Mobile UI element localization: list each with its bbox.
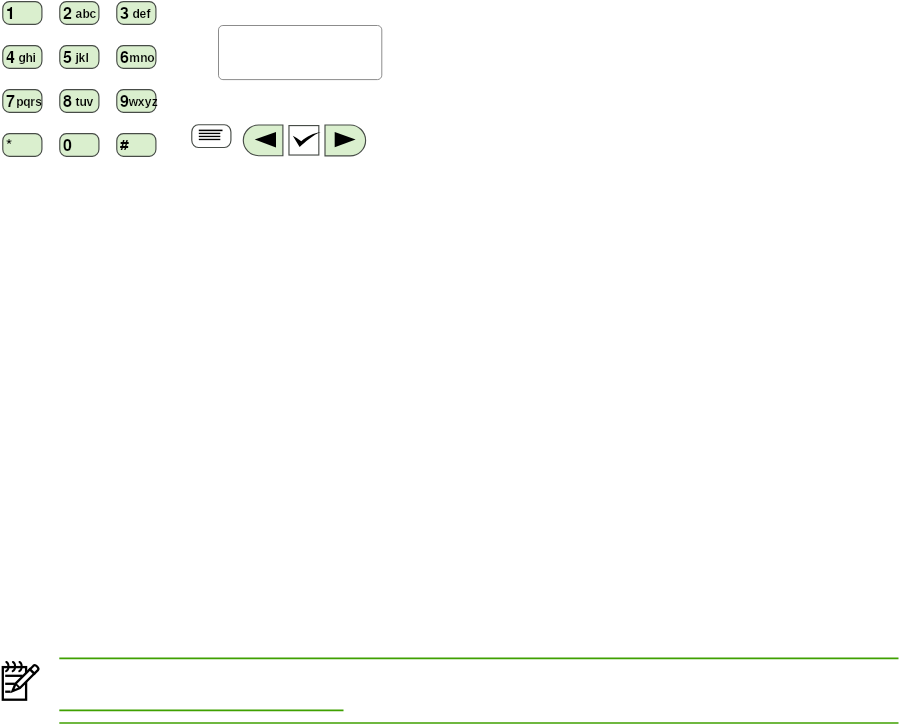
button[interactable]: Key 8tuv	[59, 89, 99, 113]
button[interactable]: Key 0	[59, 133, 99, 157]
button[interactable]: Key *	[2, 133, 42, 157]
button[interactable]: Key #	[116, 133, 156, 157]
button[interactable]: Key 6mno	[116, 45, 156, 69]
button[interactable]: Key 5jkl	[59, 45, 99, 69]
button[interactable]: Key 3def	[116, 1, 156, 25]
button[interactable]: Previous	[243, 125, 283, 156]
button[interactable]: Menu	[191, 124, 231, 148]
button[interactable]: Select	[288, 125, 319, 156]
button[interactable]: Display	[218, 25, 382, 79]
button[interactable]: Key 7pqrs	[2, 89, 42, 113]
button[interactable]: Key 1	[2, 1, 42, 25]
button[interactable]: Key 9wxyz	[116, 89, 156, 113]
button[interactable]: Next	[325, 125, 366, 156]
button[interactable]: Note	[0, 658, 40, 702]
button[interactable]: Key 4ghi	[2, 45, 42, 69]
button[interactable]: Key 2abc	[59, 1, 99, 25]
